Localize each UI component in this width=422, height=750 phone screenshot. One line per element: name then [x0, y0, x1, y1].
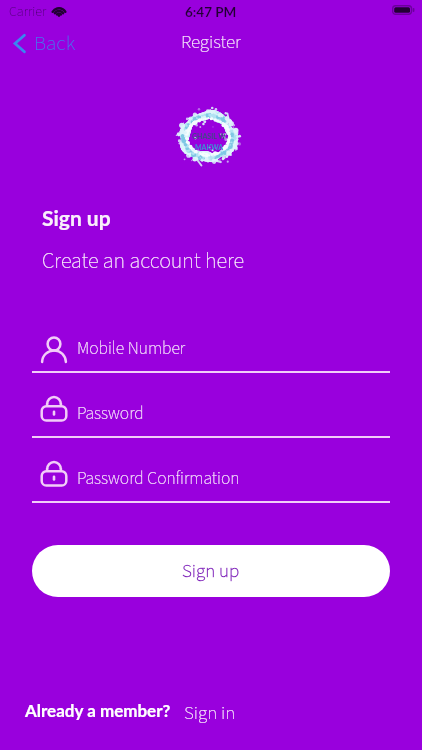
staticText: Mobile Number — [77, 336, 186, 361]
staticText: Create an account here — [42, 245, 245, 276]
button[interactable]: Sign up — [32, 545, 390, 597]
staticText: Sign up — [182, 558, 240, 585]
staticText: Sign up — [42, 205, 111, 230]
staticText: MAKWA — [195, 143, 224, 151]
staticText: Register — [181, 29, 241, 56]
button[interactable]: Password — [0, 397, 422, 438]
staticText: Already a member? — [25, 700, 171, 720]
button[interactable]: Password Confirmation — [0, 462, 422, 503]
staticText: 6:47 PM — [185, 4, 237, 20]
button[interactable]: Back — [13, 28, 80, 58]
staticText: Sign in — [184, 700, 236, 727]
staticText: Password Confirmation — [77, 466, 240, 491]
staticText: Carrier — [9, 2, 47, 22]
staticText: Sign up — [182, 558, 240, 585]
button[interactable]: Mobile Number — [0, 332, 422, 373]
staticText: GHASIL W — [192, 132, 226, 140]
button[interactable]: Sign in — [184, 700, 236, 727]
staticText: Password — [77, 401, 144, 426]
staticText: Back — [34, 28, 76, 58]
